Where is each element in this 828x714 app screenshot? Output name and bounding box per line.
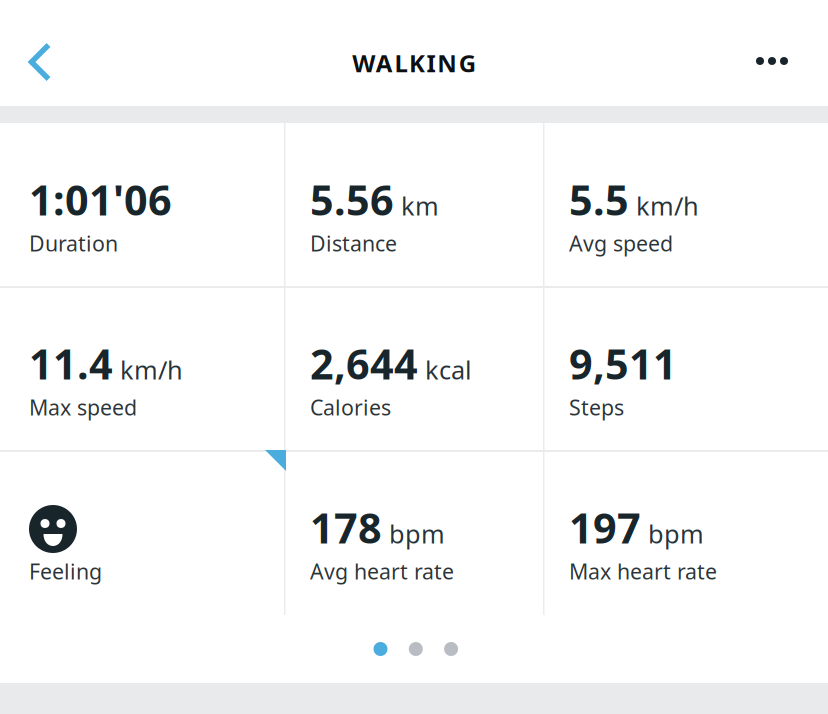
staticText: 5.5 xyxy=(569,172,629,227)
button[interactable]: Back xyxy=(9,31,71,93)
staticText: 1:01'06 xyxy=(29,172,172,227)
staticText: km/h xyxy=(120,353,183,386)
button[interactable]: More options xyxy=(741,30,803,92)
staticText: Avg speed xyxy=(569,229,673,257)
staticText: 9,511 xyxy=(569,336,677,391)
staticText: bpm xyxy=(389,517,445,550)
staticText: WALKING xyxy=(352,47,476,79)
staticText: 11.4 xyxy=(29,336,113,391)
staticText: Max speed xyxy=(29,393,137,421)
staticText: bpm xyxy=(648,517,704,550)
staticText: 5.56 xyxy=(310,172,394,227)
staticText: Distance xyxy=(310,229,397,257)
staticText: Avg heart rate xyxy=(310,557,454,585)
staticText: kcal xyxy=(425,353,472,386)
staticText: 197 xyxy=(569,500,641,555)
staticText: Feeling xyxy=(29,557,102,585)
staticText: Steps xyxy=(569,393,624,421)
staticText: 2,644 xyxy=(310,336,418,391)
button[interactable]: Feeling xyxy=(29,505,139,595)
staticText: 178 xyxy=(310,500,382,555)
staticText: km xyxy=(401,189,439,222)
staticText: Calories xyxy=(310,393,391,421)
staticText: Max heart rate xyxy=(569,557,717,585)
staticText: Duration xyxy=(29,229,118,257)
staticText: km/h xyxy=(636,189,699,222)
